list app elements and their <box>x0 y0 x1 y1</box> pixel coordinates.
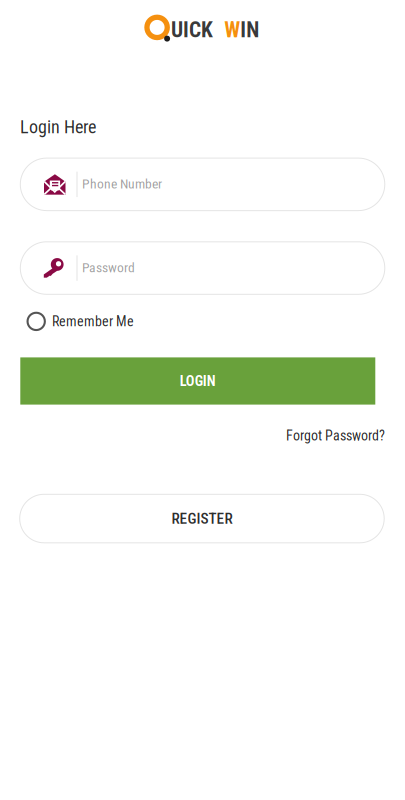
button[interactable]: Remember Me <box>26 309 166 333</box>
staticText: LOGIN <box>180 373 216 389</box>
staticText: Password <box>82 260 135 275</box>
staticText: W <box>224 17 240 42</box>
staticText: Remember Me <box>52 313 134 330</box>
staticText: REGISTER <box>171 510 232 528</box>
staticText: Forgot Password? <box>286 427 385 444</box>
staticText: IN <box>240 17 259 42</box>
button[interactable]: Forgot Password? <box>285 427 385 445</box>
staticText: UICK <box>171 17 213 42</box>
button[interactable]: REGISTER <box>19 494 385 543</box>
staticText: Login Here <box>20 116 96 138</box>
staticText: Phone Number <box>82 176 162 192</box>
button[interactable]: LOGIN <box>20 357 375 405</box>
